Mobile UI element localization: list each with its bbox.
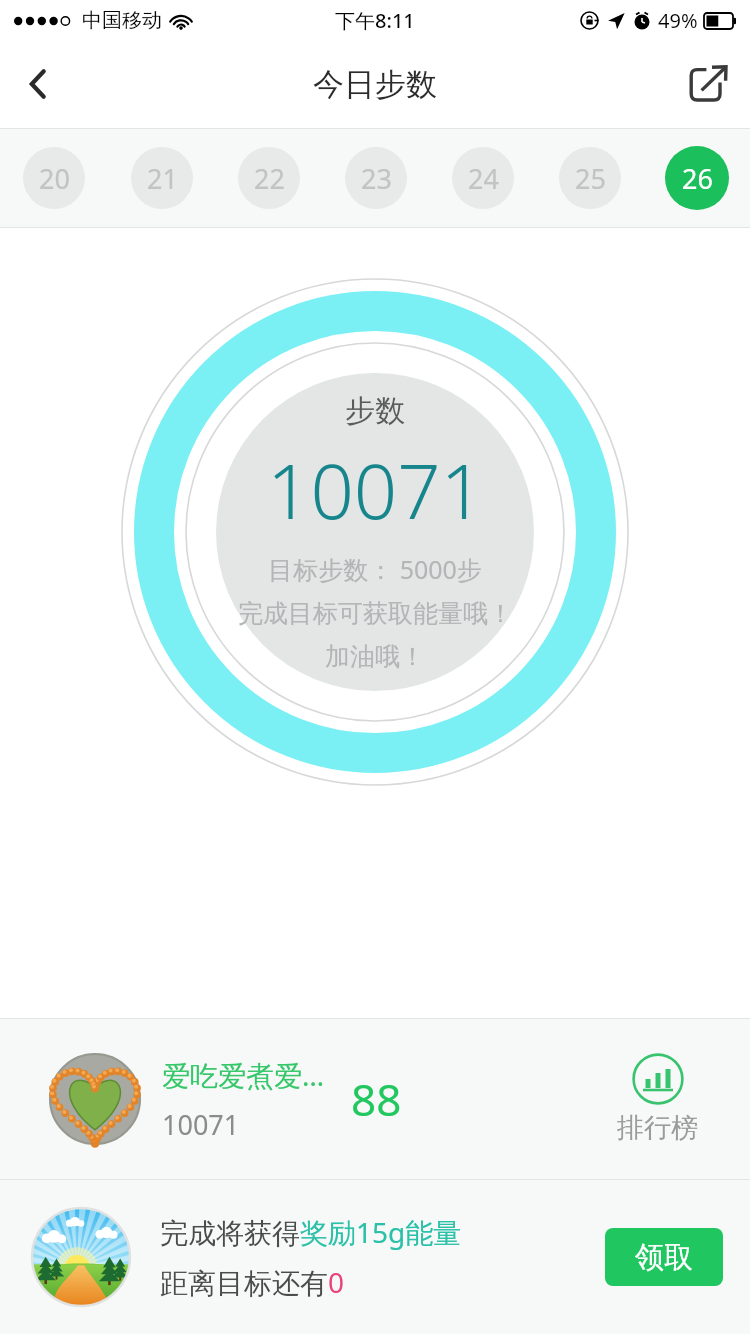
button[interactable]: 20 — [23, 147, 85, 209]
staticText: 完成将获得奖励15g能量 — [160, 1213, 462, 1251]
staticText: 排行榜 — [617, 1111, 698, 1145]
staticText: 23 — [361, 160, 392, 197]
button[interactable]: 22 — [238, 147, 300, 209]
staticText: 10071 — [162, 1106, 240, 1143]
staticText: 22 — [254, 160, 285, 197]
button[interactable]: 爱吃爱煮爱… — [0, 1019, 750, 1179]
staticText: 下午8:11 — [335, 7, 415, 34]
staticText: 中国移动 — [82, 8, 162, 33]
staticText: 目标步数： 5000步 — [268, 552, 482, 586]
button[interactable]: 领取 — [605, 1228, 723, 1286]
button[interactable]: Share — [666, 40, 750, 128]
staticText: 20 — [39, 160, 70, 197]
staticText: 88 — [351, 1069, 402, 1129]
button[interactable]: 排行榜 — [617, 1053, 698, 1145]
staticText: 10071 — [267, 438, 484, 542]
staticText: 爱吃爱煮爱… — [162, 1056, 325, 1094]
button[interactable]: 23 — [345, 147, 407, 209]
staticText: 加油哦！ — [325, 641, 425, 672]
button[interactable]: 26 — [665, 146, 729, 210]
staticText: 今日步数 — [313, 65, 437, 104]
staticText: 领取 — [635, 1239, 693, 1276]
staticText: 24 — [468, 160, 499, 197]
staticText: 26 — [682, 160, 713, 197]
staticText: 步数 — [345, 392, 405, 430]
staticText: 完成目标可获取能量哦！ — [238, 598, 513, 629]
button[interactable]: 25 — [559, 147, 621, 209]
button[interactable]: 24 — [452, 147, 514, 209]
button[interactable]: Back — [0, 40, 76, 128]
button[interactable]: 21 — [131, 147, 193, 209]
staticText: 21 — [147, 160, 178, 197]
staticText: 距离目标还有0 — [160, 1263, 345, 1301]
staticText: 25 — [575, 160, 606, 197]
staticText: 49% — [658, 7, 698, 34]
